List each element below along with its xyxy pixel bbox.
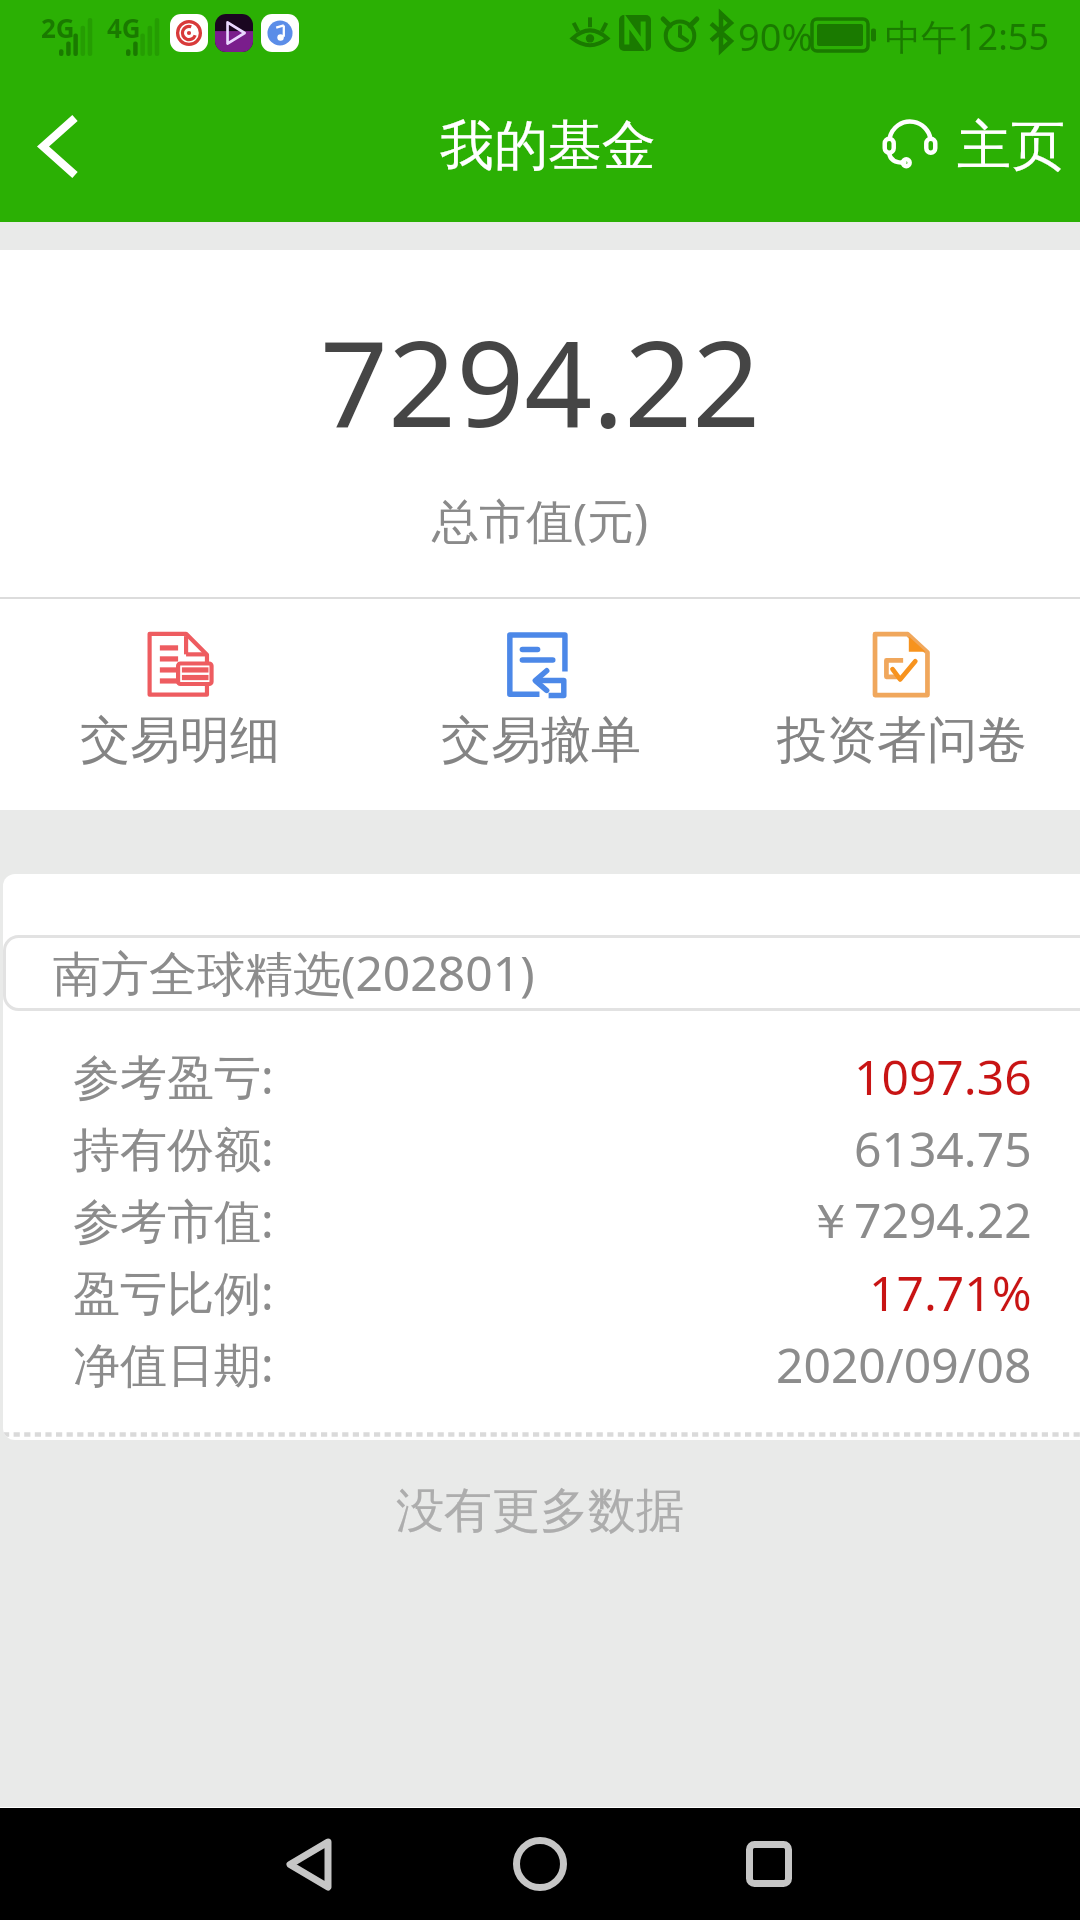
button[interactable]: Home — [480, 1808, 600, 1920]
staticText: 参考盈亏: — [73, 1044, 274, 1108]
button[interactable]: Recent apps — [709, 1808, 829, 1920]
staticText: 交易明细 — [80, 709, 280, 772]
staticText: 盈亏比例: — [73, 1260, 274, 1324]
staticText: 2020/09/08 — [776, 1332, 1032, 1397]
staticText: 没有更多数据 — [396, 1481, 684, 1541]
button[interactable]: 投资者问卷 — [732, 607, 1072, 772]
button[interactable]: 主页 Home — [864, 70, 1080, 222]
staticText: 参考市值: — [73, 1188, 274, 1252]
staticText: 中午12:55 — [885, 12, 1050, 61]
button[interactable]: 交易明细 — [10, 607, 350, 772]
staticText: 交易撤单 — [441, 709, 641, 772]
button[interactable]: Back — [0, 70, 118, 222]
staticText: 2G — [41, 10, 75, 45]
staticText: 主页 — [957, 112, 1065, 180]
button[interactable]: 交易撤单 — [371, 607, 711, 772]
staticText: 7294.22 — [320, 300, 761, 462]
staticText: 17.71% — [869, 1260, 1032, 1325]
staticText: 90% — [738, 10, 814, 62]
staticText: 总市值(元) — [432, 488, 649, 552]
staticText: 净值日期: — [73, 1332, 274, 1396]
staticText: 4G — [107, 10, 141, 45]
staticText: 投资者问卷 — [777, 709, 1027, 772]
button[interactable]: 南方全球精选(202801) — [3, 874, 1080, 1440]
staticText: 南方全球精选(202801) — [53, 940, 535, 1006]
staticText: 持有份额: — [73, 1116, 274, 1180]
staticText: 1097.36 — [854, 1044, 1032, 1109]
staticText: 6134.75 — [854, 1116, 1032, 1181]
staticText: 我的基金 — [440, 112, 656, 180]
staticText: ￥7294.22 — [806, 1187, 1032, 1253]
button[interactable]: Back — [249, 1808, 369, 1920]
